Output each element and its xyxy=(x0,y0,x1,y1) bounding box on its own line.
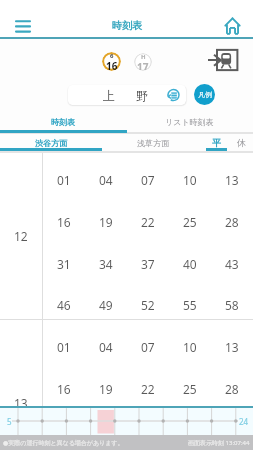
staticText: 野 xyxy=(136,88,148,103)
button[interactable]: 凡例 xyxy=(194,84,215,105)
staticText: 渋谷方面 xyxy=(35,138,67,148)
staticText: 28 xyxy=(225,214,239,228)
staticText: リスト時刻表 xyxy=(165,117,214,127)
staticText: 24 xyxy=(239,416,249,427)
button[interactable]: 時刻表 xyxy=(0,113,126,132)
staticText: 時刻表 xyxy=(51,117,75,127)
staticText: 12 xyxy=(14,228,28,244)
staticText: 04 xyxy=(99,172,113,186)
staticText: 01 xyxy=(57,172,71,186)
staticText: 19 xyxy=(99,381,113,395)
staticText: 58 xyxy=(225,297,239,311)
staticText: 休 xyxy=(237,137,246,148)
button[interactable]: 平 xyxy=(204,134,229,149)
staticText: 5 xyxy=(7,416,12,427)
staticText: 28 xyxy=(225,381,239,395)
staticText: 19 xyxy=(99,214,113,228)
button[interactable]: 6 xyxy=(102,52,121,71)
staticText: 43 xyxy=(225,256,239,270)
button[interactable]: 休 xyxy=(229,134,253,149)
staticText: 49 xyxy=(99,297,113,311)
staticText: 40 xyxy=(183,256,197,270)
staticText: 凡例 xyxy=(198,90,212,99)
staticText: 10 xyxy=(183,339,197,353)
staticText: 平 xyxy=(212,137,221,148)
staticText: 55 xyxy=(183,297,197,311)
staticText: 13 xyxy=(14,395,28,407)
staticText: 37 xyxy=(141,256,155,270)
staticText: 04 xyxy=(99,339,113,353)
staticText: 浅草方面 xyxy=(137,138,169,148)
staticText: 16 xyxy=(57,381,71,395)
staticText: 上 xyxy=(103,88,115,103)
staticText: 22 xyxy=(141,214,155,228)
staticText: 46 xyxy=(57,297,71,311)
staticText: 17 xyxy=(137,60,149,70)
staticText: 34 xyxy=(99,256,113,270)
staticText: 13 xyxy=(225,339,239,353)
button[interactable]: 浅草方面 xyxy=(102,134,204,149)
staticText: 25 xyxy=(183,214,197,228)
button[interactable]: 5 xyxy=(0,406,253,435)
button[interactable]: 渋谷方面 xyxy=(0,134,102,149)
staticText: 13 xyxy=(225,172,239,186)
staticText: 07 xyxy=(141,339,155,353)
staticText: 10 xyxy=(183,172,197,186)
staticText: 16 xyxy=(106,59,118,70)
staticText: 時刻表 xyxy=(112,19,142,32)
staticText: ●実際の運行時刻と異なる場合があります。 xyxy=(3,439,124,447)
staticText: 07 xyxy=(141,172,155,186)
button[interactable]: 上 xyxy=(68,85,186,105)
staticText: 16 xyxy=(57,214,71,228)
button[interactable]: H xyxy=(134,53,152,71)
staticText: 6 xyxy=(110,52,114,60)
button[interactable]: Menu xyxy=(8,12,38,40)
staticText: 01 xyxy=(57,339,71,353)
staticText: 52 xyxy=(141,297,155,311)
staticText: H xyxy=(141,53,146,61)
staticText: 22 xyxy=(141,381,155,395)
staticText: 31 xyxy=(57,256,71,270)
button[interactable]: Home xyxy=(218,12,246,40)
button[interactable]: リスト時刻表 xyxy=(126,113,253,132)
button[interactable]: Select departure station xyxy=(208,48,240,72)
staticText: 画面表示時刻 13:07:44 xyxy=(188,439,250,447)
staticText: 25 xyxy=(183,381,197,395)
